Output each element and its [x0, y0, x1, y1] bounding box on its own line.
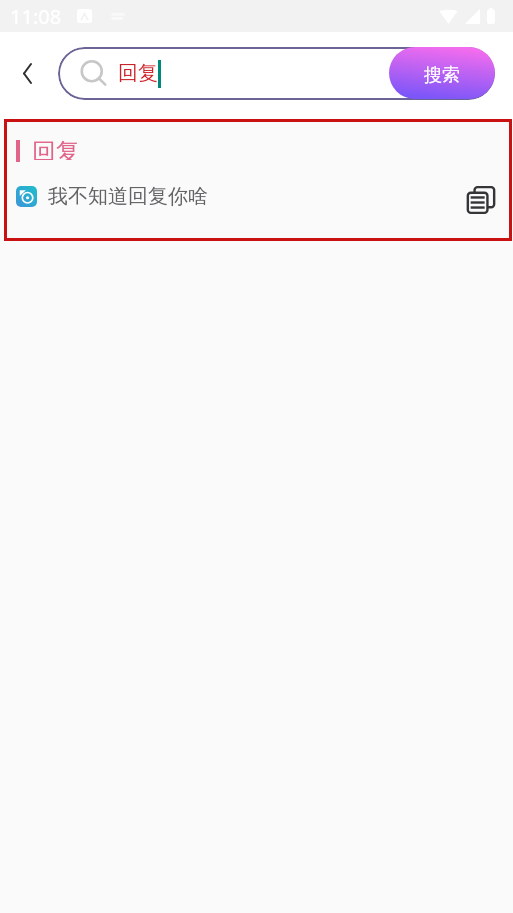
staticText: 11:08: [10, 3, 62, 30]
staticText: 回复: [32, 137, 80, 160]
button[interactable]: 我不知道回复你啥: [4, 176, 512, 216]
staticText: 回复: [118, 61, 158, 86]
staticText: 我不知道回复你啥: [48, 184, 208, 209]
button[interactable]: Back: [11, 57, 43, 89]
button[interactable]: 搜索: [389, 47, 495, 99]
button[interactable]: 回复: [58, 47, 495, 100]
button[interactable]: Copy: [463, 182, 499, 218]
staticText: 搜索: [424, 64, 460, 87]
